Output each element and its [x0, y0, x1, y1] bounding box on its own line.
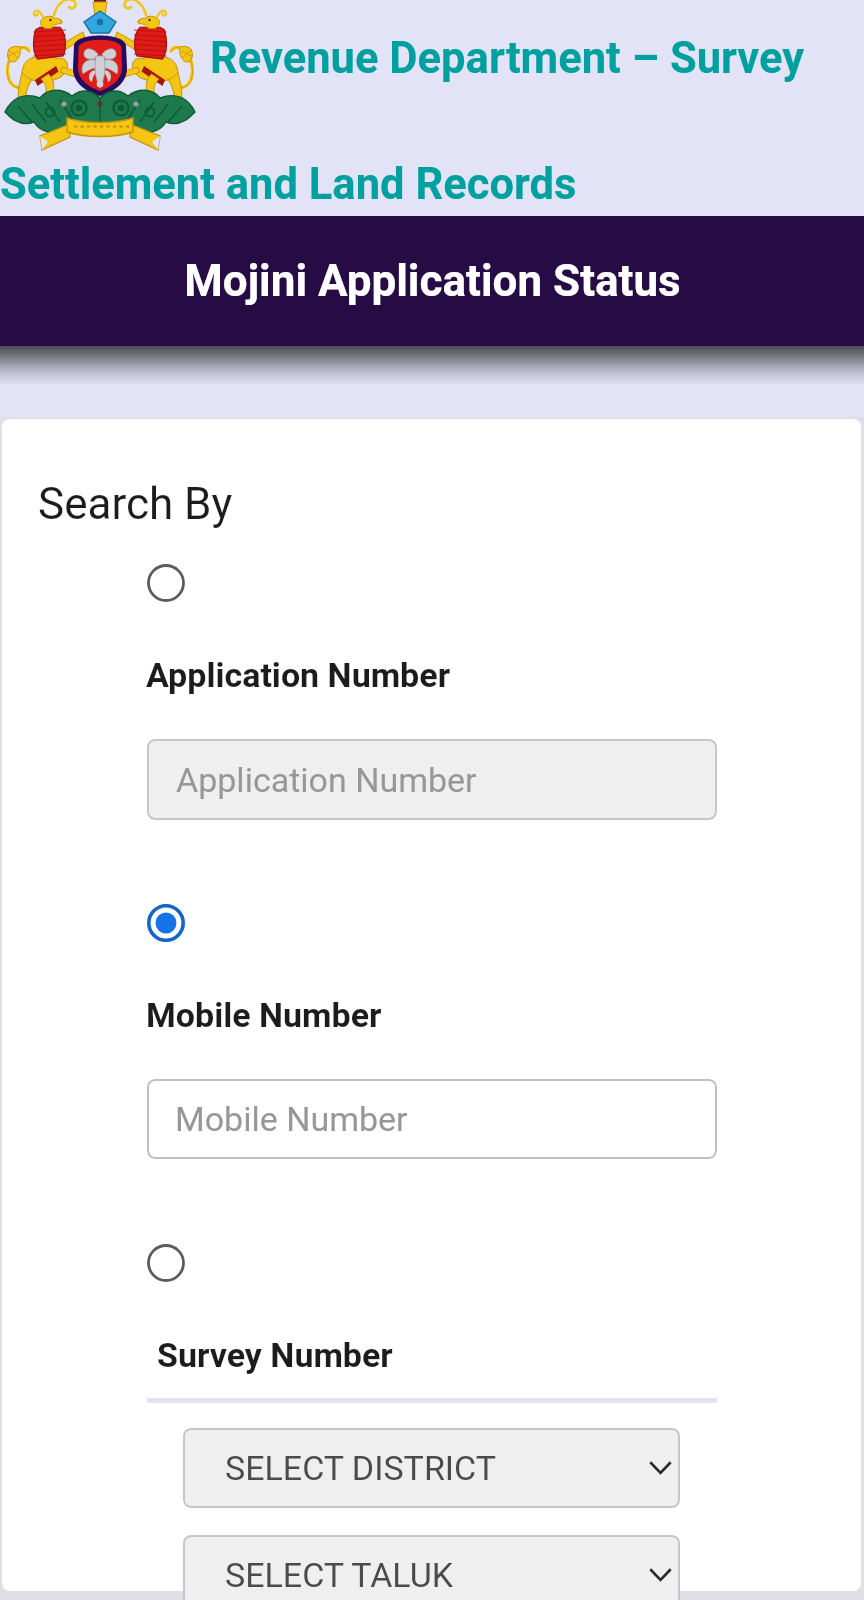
- staticText: Search By: [38, 478, 233, 530]
- button[interactable]: Mojini Application Status: [0, 216, 864, 346]
- button[interactable]: Select option: [147, 564, 185, 602]
- button[interactable]: Select option: [147, 1244, 185, 1282]
- button[interactable]: SELECT TALUK: [183, 1535, 680, 1600]
- staticText: Survey Number: [157, 1335, 393, 1375]
- staticText: SELECT DISTRICT: [225, 1448, 497, 1488]
- staticText: Mojini Application Status: [184, 255, 681, 307]
- staticText: Mobile Number: [146, 995, 382, 1035]
- button[interactable]: SELECT DISTRICT: [183, 1428, 680, 1508]
- staticText: Revenue Department – Survey: [210, 33, 805, 84]
- staticText: Application Number: [146, 655, 451, 695]
- button[interactable]: Selected option: [147, 904, 185, 942]
- button[interactable]: Mobile Number: [147, 1079, 717, 1159]
- staticText: Application Number: [176, 760, 477, 800]
- staticText: SELECT TALUK: [225, 1555, 454, 1595]
- staticText: Settlement and Land Records: [0, 159, 577, 210]
- staticText: Mobile Number: [175, 1099, 408, 1139]
- button[interactable]: Application Number: [147, 739, 717, 820]
